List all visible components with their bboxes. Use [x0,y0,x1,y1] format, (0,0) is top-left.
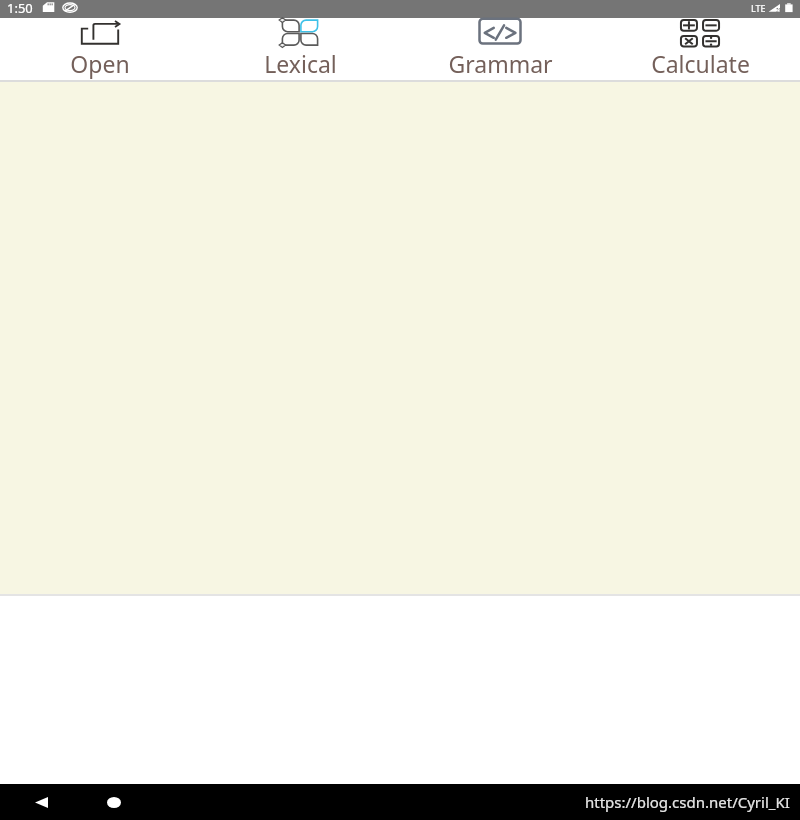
staticText: https://blog.csdn.net/Cyril_KI [585,792,790,812]
button[interactable]: Lexical [200,18,400,80]
button[interactable]: Back [21,784,61,820]
button[interactable]: Calculate [600,18,800,80]
staticText: Open [70,48,130,79]
button[interactable]: Grammar [400,18,600,80]
staticText: LTE [751,2,766,14]
button[interactable]: Open [0,18,200,80]
staticText: Calculate [651,48,750,79]
staticText: Grammar [448,48,553,79]
staticText: 1:50 [7,0,33,17]
staticText: Lexical [264,48,337,79]
button[interactable]: Home [94,784,134,820]
